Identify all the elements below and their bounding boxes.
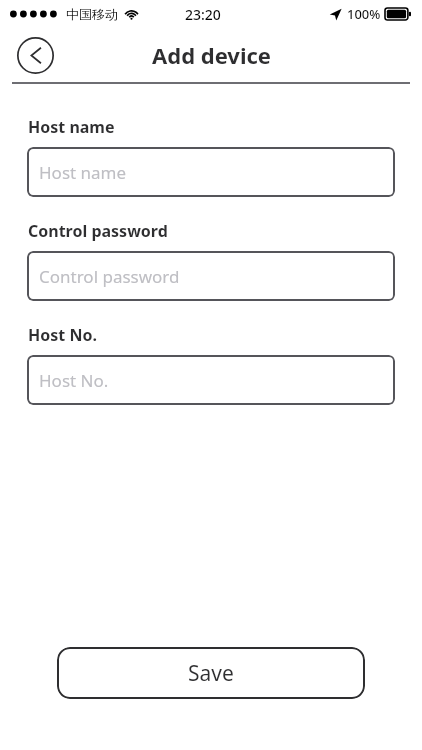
staticText: Add device	[152, 40, 271, 70]
staticText: Control password	[39, 265, 180, 288]
button[interactable]: Save	[57, 647, 365, 699]
staticText: 中国移动	[66, 6, 118, 22]
staticText: Control password	[28, 220, 168, 242]
staticText: Host name	[28, 116, 115, 138]
staticText: Host No.	[28, 324, 97, 346]
staticText: 23:20	[185, 5, 221, 24]
staticText: Host name	[39, 161, 127, 184]
staticText: Host No.	[39, 369, 109, 392]
button[interactable]: Control password	[27, 251, 395, 301]
button[interactable]: Back	[17, 37, 54, 74]
button[interactable]: Host No.	[27, 355, 395, 405]
staticText: Save	[188, 659, 234, 688]
button[interactable]: Host name	[27, 147, 395, 197]
staticText: 100%	[347, 5, 381, 23]
